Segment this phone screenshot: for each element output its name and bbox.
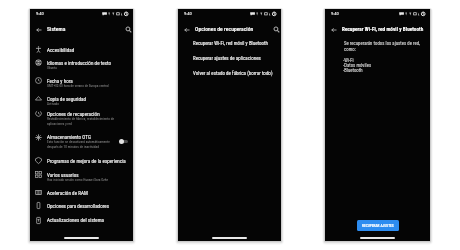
button[interactable] (30, 45, 133, 58)
staticText: aplicaciones y red (47, 122, 72, 126)
staticText: Activado (47, 102, 60, 106)
staticText: Accesibilidad (47, 47, 75, 53)
button[interactable] (178, 66, 281, 80)
staticText: GMT+02:00 hora de verano de Europa centr… (47, 84, 109, 88)
button[interactable]: Search (271, 24, 281, 34)
button[interactable] (178, 36, 281, 50)
staticText: Recuperar Wi-Fi, red móvil y Bluetooth (193, 40, 268, 46)
button[interactable]: Toggle Almacenamiento OTG (119, 139, 127, 144)
button[interactable] (30, 132, 133, 149)
button[interactable] (30, 215, 133, 228)
button[interactable]: Search (123, 24, 133, 34)
staticText: Opciones de recuperación (47, 111, 100, 117)
button[interactable] (30, 109, 133, 126)
staticText: Idiomas e introducción de texto (47, 60, 112, 66)
staticText: Ubuntu (47, 66, 57, 70)
staticText: Esta función se desactivará automáticame… (47, 140, 110, 144)
staticText: Recuperar ajustes de aplicaciones (193, 55, 261, 61)
button[interactable] (30, 76, 133, 88)
staticText: después de 10 minutos de inactividad (47, 145, 99, 149)
staticText: Opciones para desarrolladores (47, 203, 109, 209)
staticText: Almacenamiento OTG (47, 134, 91, 140)
button[interactable]: RECUPERAR AJUSTES (357, 220, 399, 231)
button[interactable]: Back (328, 24, 340, 36)
button[interactable] (30, 94, 133, 106)
staticText: 9:40 (184, 11, 192, 16)
button[interactable] (30, 187, 133, 200)
staticText: 9:40 (331, 11, 339, 16)
staticText: como: (344, 47, 356, 53)
button[interactable]: Back (181, 24, 193, 36)
button[interactable] (30, 201, 133, 214)
button[interactable] (30, 170, 133, 182)
staticText: Restablecimiento de fábrica, restablecim… (47, 117, 115, 121)
staticText: Actualizaciones del sistema (47, 217, 104, 223)
staticText: Aceleración de RAM (47, 190, 88, 196)
button[interactable] (30, 155, 133, 168)
staticText: Opciones de recuperación (195, 26, 254, 32)
staticText: Has iniciado sesión como Huawei Sara Ozh… (47, 178, 109, 182)
staticText: Volver al estado de fábrica (borrar todo… (193, 70, 273, 76)
staticText: Programas de mejora de la experiencia (47, 158, 126, 164)
staticText: Recuperar Wi-Fi, red móvil y Bluetooth (342, 26, 424, 32)
staticText: 9:40 (36, 11, 44, 16)
staticText: Se recuperarán todos los ajustes de red, (344, 41, 421, 47)
button[interactable] (178, 51, 281, 65)
staticText: -Wi-Fi (343, 58, 354, 64)
staticText: RECUPERAR AJUSTES (362, 224, 394, 228)
staticText: Copia de seguridad (47, 96, 87, 102)
button[interactable] (30, 58, 133, 70)
staticText: -Datos móviles (343, 63, 372, 69)
staticText: Fecha y hora (47, 78, 73, 84)
staticText: -Bluetooth (343, 68, 363, 74)
staticText: Sistema (47, 26, 66, 33)
staticText: Varios usuarios (47, 172, 79, 178)
button[interactable]: Back (33, 24, 45, 36)
